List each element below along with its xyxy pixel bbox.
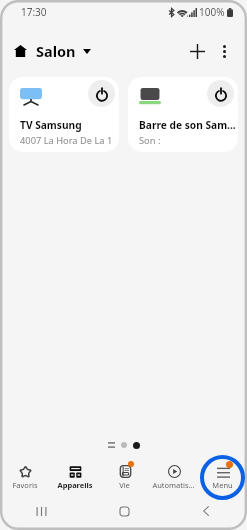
- staticText: 4007 La Hora De La 1: [20, 134, 113, 147]
- button[interactable]: Menu: [198, 455, 247, 500]
- button[interactable]: Add device: [183, 37, 211, 65]
- button[interactable]: More options: [211, 38, 237, 64]
- button[interactable]: Back: [165, 502, 247, 520]
- button[interactable]: Page 2: [130, 439, 142, 451]
- staticText: Automatis...: [149, 480, 198, 490]
- staticText: Barre de son Sam...: [139, 118, 236, 132]
- staticText: Vie: [100, 480, 149, 490]
- staticText: Menu: [198, 480, 247, 490]
- staticText: Appareils: [50, 480, 100, 490]
- button[interactable]: Power: [88, 80, 115, 107]
- staticText: Favoris: [0, 480, 50, 490]
- staticText: 100%: [199, 5, 225, 19]
- button[interactable]: Recents: [0, 502, 83, 520]
- staticText: 17:30: [21, 5, 47, 19]
- button[interactable]: Favoris: [0, 455, 50, 500]
- button[interactable]: Power: [207, 80, 234, 107]
- button[interactable]: Page 1: [118, 439, 130, 451]
- button[interactable]: Vie: [100, 455, 149, 500]
- staticText: Son :: [139, 134, 161, 147]
- button[interactable]: Power: [128, 77, 238, 152]
- button[interactable]: Appareils: [50, 455, 100, 500]
- button[interactable]: Power: [9, 77, 119, 152]
- staticText: Salon: [36, 41, 76, 61]
- button[interactable]: Home: [83, 502, 165, 520]
- button[interactable]: Salon: [12, 35, 93, 67]
- button[interactable]: List view: [105, 439, 118, 451]
- button[interactable]: Automatis...: [149, 455, 198, 500]
- staticText: TV Samsung: [20, 118, 82, 132]
